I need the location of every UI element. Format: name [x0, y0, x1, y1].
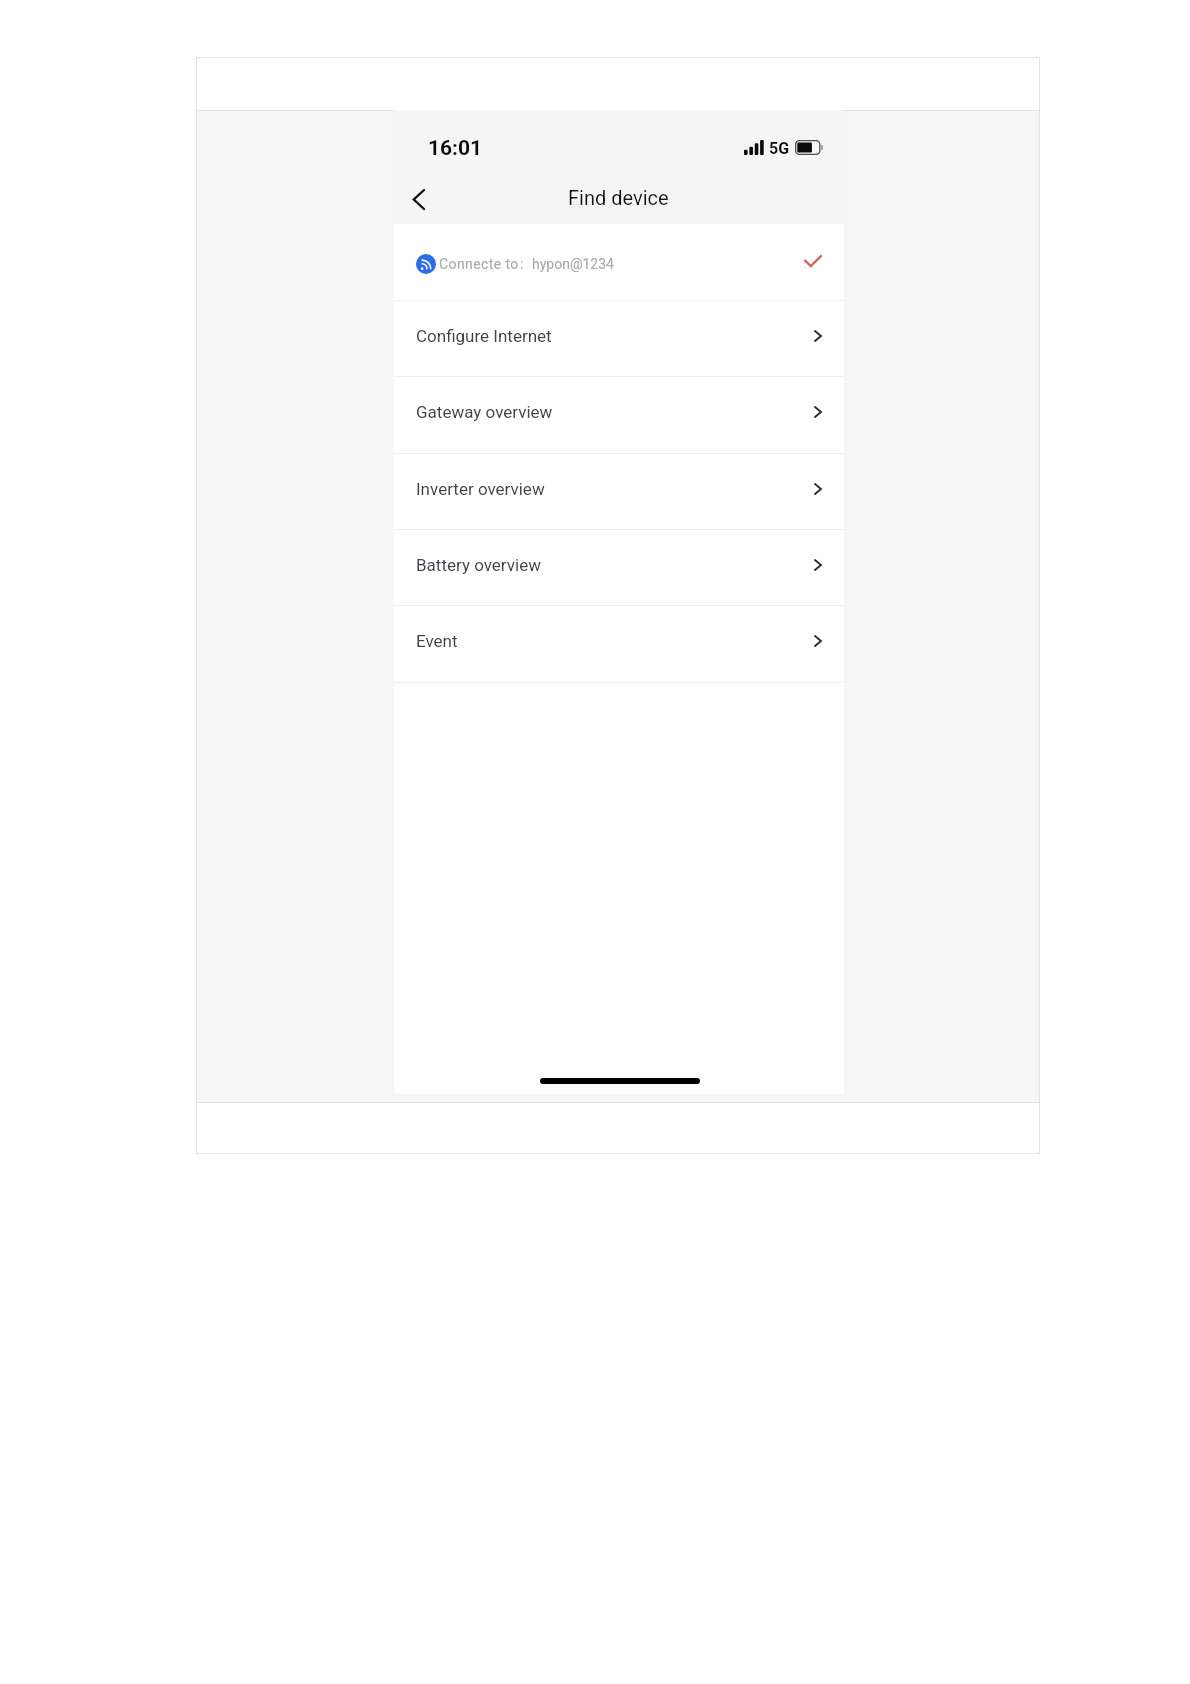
- staticText: 5G: [769, 139, 790, 158]
- button[interactable]: Connecte to: [394, 224, 844, 300]
- staticText: Event: [416, 631, 458, 651]
- button[interactable]: Event: [394, 605, 844, 681]
- staticText: 16:01: [428, 136, 483, 161]
- staticText: Inverter overview: [416, 479, 545, 499]
- button[interactable]: Inverter overview: [394, 453, 844, 529]
- other: Connected: [805, 256, 821, 266]
- staticText: Configure Internet: [416, 326, 552, 346]
- staticText: Find device: [568, 186, 669, 209]
- staticText: hypon@1234: [532, 256, 614, 272]
- button[interactable]: Back: [396, 177, 440, 221]
- button[interactable]: Battery overview: [394, 529, 844, 605]
- button[interactable]: Gateway overview: [394, 376, 844, 452]
- staticText: Battery overview: [416, 555, 541, 575]
- button[interactable]: Configure Internet: [394, 300, 844, 376]
- staticText: :: [520, 256, 524, 272]
- staticText: Connecte to: [439, 256, 519, 272]
- staticText: Gateway overview: [416, 402, 553, 422]
